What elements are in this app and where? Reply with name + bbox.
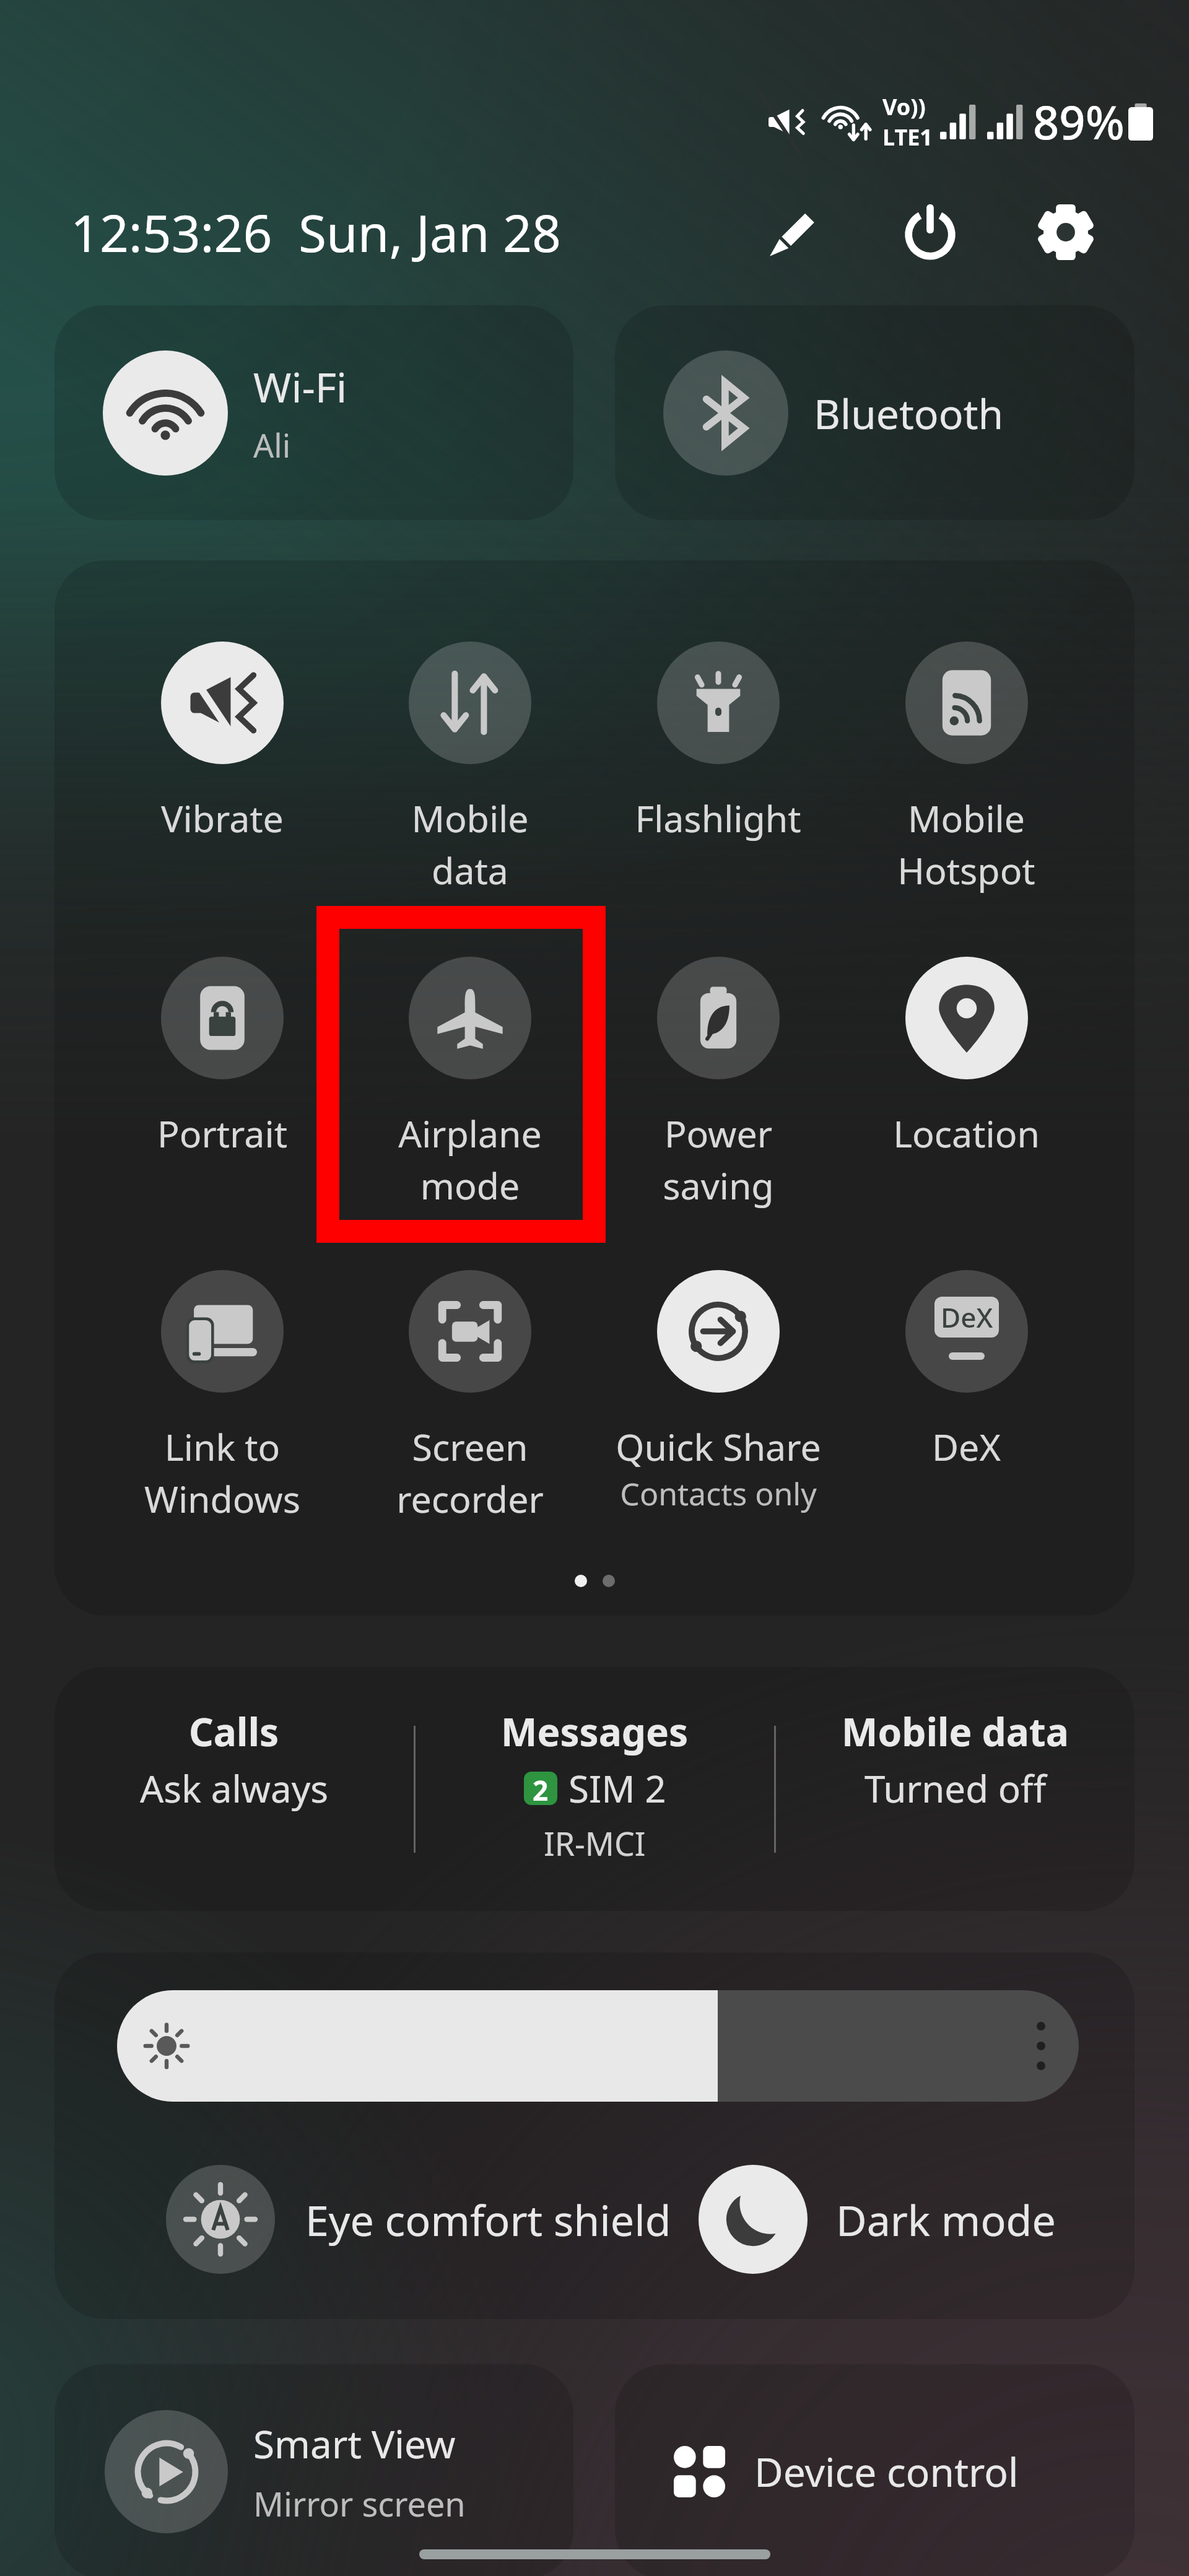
staticText: Vibrate [161,793,284,843]
button[interactable]: Quick Share [594,1270,842,1515]
staticText: Vo)) [882,92,926,122]
staticText: Mobile Hotspot [897,793,1035,895]
staticText: Contacts only [620,1473,817,1515]
button[interactable]: Mobile Hotspot [842,642,1091,895]
staticText: Bluetooth [814,385,1004,441]
staticText: Link to Windows [144,1422,300,1523]
button[interactable]: Power [884,189,977,276]
staticText: Smart View [253,2417,456,2469]
button[interactable]: Mobile data [346,642,594,895]
button[interactable]: Mobile data [776,1667,1135,1911]
button[interactable]: DeX [842,1270,1091,1471]
staticText: DeX [932,1422,1001,1471]
staticText: Messages [501,1705,689,1757]
staticText: Location [893,1108,1040,1158]
staticText: LTE1 [882,122,933,152]
button[interactable]: Link to Windows [98,1270,346,1523]
staticText: Airplane mode [398,1108,542,1210]
staticText: Flashlight [635,793,801,843]
button[interactable]: Dark mode [699,2165,1056,2274]
button[interactable]: Vibrate [98,642,346,843]
staticText: Ask always [140,1763,329,1814]
staticText: Mirror screen [253,2481,466,2526]
button[interactable]: Flashlight [594,642,842,843]
button[interactable]: Power saving [594,957,842,1210]
button[interactable]: Smart View [54,2364,573,2576]
staticText: Device control [754,2445,1019,2499]
button[interactable]: Brightness [117,1990,1079,2102]
button[interactable]: Screen recorder [346,1270,594,1523]
staticText: Screen recorder [396,1422,544,1523]
button[interactable]: Messages [416,1667,774,1911]
staticText: Wi-Fi [253,359,347,414]
button[interactable]: Settings [1019,189,1112,276]
staticText: Ali [253,423,291,467]
button[interactable]: Device control [615,2364,1135,2576]
staticText: 89% [1033,90,1125,153]
staticText: IR-MCI [544,1821,646,1865]
button[interactable]: Airplane mode [346,957,594,1210]
staticText: Mobile data [842,1705,1069,1757]
button[interactable]: Edit quick settings [745,189,838,276]
staticText: Turned off [865,1763,1047,1814]
staticText: Eye comfort shield [305,2191,671,2248]
staticText: Dark mode [836,2191,1056,2248]
button[interactable]: Bluetooth [615,305,1135,520]
button[interactable]: Portrait [98,957,346,1158]
button[interactable]: Wi-Fi [54,305,573,520]
button[interactable]: Eye comfort shield [166,2165,671,2274]
staticText: Mobile data [411,793,529,895]
staticText: 2 [533,1772,549,1805]
staticText: 12:53:26 Sun, Jan 28 [71,198,561,267]
staticText: Calls [189,1705,279,1757]
button[interactable]: Calls [54,1667,414,1911]
button[interactable]: Location [842,957,1091,1158]
staticText: SIM 2 [568,1763,666,1814]
staticText: DeX [941,1299,993,1336]
staticText: Quick Share [616,1422,821,1471]
staticText: Portrait [157,1108,287,1158]
staticText: Power saving [663,1108,774,1210]
